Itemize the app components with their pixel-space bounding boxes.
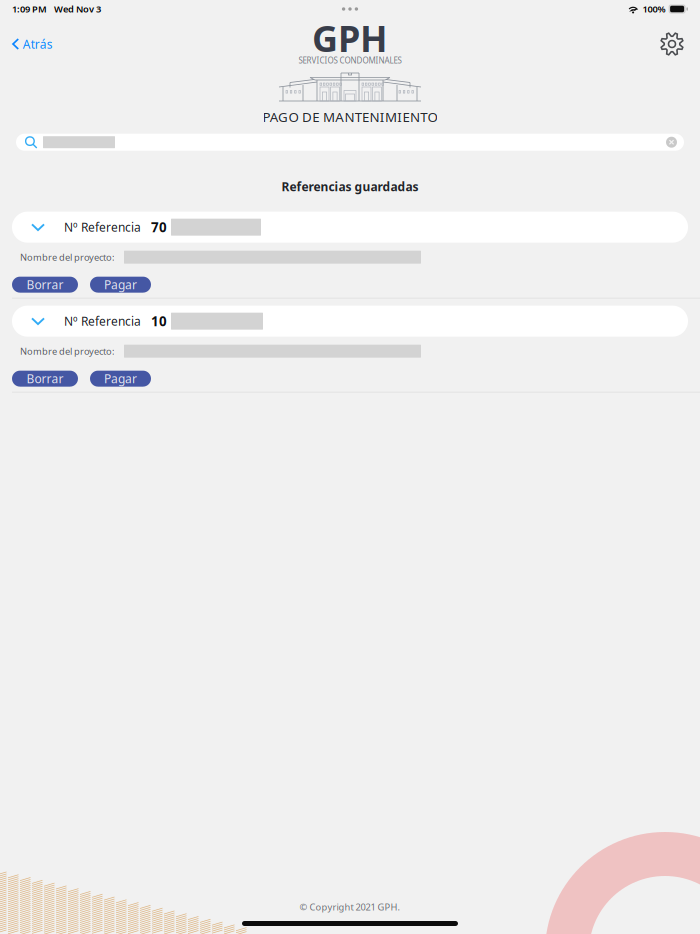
button[interactable]: Atrás bbox=[0, 31, 63, 57]
staticText: 100% bbox=[643, 3, 666, 15]
staticText: Borrar bbox=[26, 277, 63, 293]
staticText: GPH bbox=[312, 14, 388, 62]
staticText: Referencias guardadas bbox=[281, 179, 418, 195]
staticText: Atrás bbox=[23, 36, 53, 52]
button[interactable]: Multitasking controls bbox=[330, 1, 370, 17]
staticText: 70 bbox=[151, 218, 167, 236]
button[interactable]: Borrar bbox=[12, 371, 78, 387]
staticText: 10 bbox=[151, 312, 167, 330]
button[interactable]: Nº Referencia bbox=[0, 306, 700, 337]
staticText: SERVICIOS CONDOMINALES bbox=[298, 55, 401, 66]
staticText: Pagar bbox=[104, 371, 137, 387]
button[interactable]: Nº Referencia bbox=[0, 212, 700, 243]
button[interactable]: Pagar bbox=[90, 371, 151, 387]
staticText: Nº Referencia bbox=[64, 313, 141, 329]
staticText: Pagar bbox=[104, 277, 137, 293]
staticText: Wed Nov 3 bbox=[54, 3, 101, 15]
staticText: © Copyright 2021 GPH. bbox=[299, 901, 400, 913]
staticText: Borrar bbox=[26, 371, 63, 387]
staticText: Nº Referencia bbox=[64, 219, 141, 235]
staticText: PAGO DE MANTENIMIENTO bbox=[262, 108, 437, 126]
staticText: Nombre del proyecto: bbox=[20, 251, 115, 263]
staticText: 1:09 PM bbox=[12, 3, 47, 15]
button[interactable]: Pagar bbox=[90, 277, 151, 293]
staticText: Nombre del proyecto: bbox=[20, 345, 115, 357]
button[interactable]: Settings bbox=[650, 31, 700, 57]
button[interactable]: Borrar bbox=[12, 277, 78, 293]
